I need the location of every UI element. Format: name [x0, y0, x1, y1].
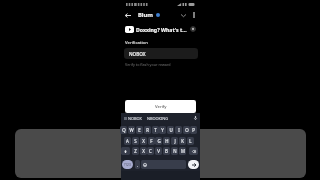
button[interactable]: Back [123, 10, 133, 20]
button[interactable]: Y [159, 126, 166, 134]
button[interactable]: Backspace [189, 147, 198, 155]
staticText: G [157, 138, 161, 144]
staticText: Blum [138, 11, 154, 19]
staticText: W [129, 127, 134, 133]
button[interactable]: T [152, 126, 159, 134]
staticText: U [169, 127, 173, 133]
button[interactable]: X [140, 147, 147, 155]
staticText: N [173, 148, 177, 154]
button[interactable]: More options [189, 10, 199, 20]
staticText: Verify [155, 104, 167, 110]
button[interactable]: Z [132, 147, 139, 155]
button[interactable]: Channel avatar [190, 26, 196, 32]
button[interactable]: G [155, 137, 162, 145]
staticText: M [181, 148, 185, 154]
button[interactable]: V [155, 147, 162, 155]
staticText: NOBOX [129, 51, 146, 57]
staticText: F [150, 138, 153, 144]
staticText: NBOOKING [147, 116, 169, 121]
staticText: A [126, 138, 129, 144]
button[interactable]: J [171, 137, 178, 145]
staticText: E [138, 127, 141, 133]
button[interactable]: Comma [135, 160, 140, 169]
button[interactable]: K [179, 137, 186, 145]
button[interactable]: Enter [188, 160, 199, 169]
staticText: I [178, 127, 180, 133]
staticText: L [189, 138, 192, 144]
button[interactable]: X [140, 137, 147, 145]
staticText: C [149, 148, 152, 154]
staticText: X [142, 148, 145, 154]
staticText: T [154, 127, 157, 133]
button[interactable]: Expand [178, 10, 188, 20]
button[interactable]: U [167, 126, 174, 134]
button[interactable]: M [179, 147, 186, 155]
staticText: K [181, 138, 184, 144]
staticText: R [146, 127, 149, 133]
staticText: Doxxing? What's t… [136, 26, 187, 33]
staticText: NOBOX [128, 116, 142, 121]
staticText: O [185, 127, 189, 133]
button[interactable]: Shift [121, 147, 130, 155]
staticText: J [174, 138, 176, 144]
button[interactable]: W [128, 126, 135, 134]
button[interactable]: Space [141, 160, 186, 169]
staticText: Y [161, 127, 164, 133]
staticText: Q [122, 127, 126, 133]
staticText: X [142, 138, 145, 144]
button[interactable]: B [163, 147, 170, 155]
staticText: , [137, 162, 139, 167]
staticText: B [165, 148, 168, 154]
staticText: Verification [125, 40, 148, 46]
button[interactable]: Verify [125, 100, 196, 113]
staticText: V [157, 148, 160, 154]
button[interactable]: I [175, 126, 182, 134]
button[interactable]: N [171, 147, 178, 155]
button[interactable]: P [190, 126, 197, 134]
button[interactable]: R [144, 126, 151, 134]
staticText: S [134, 138, 137, 144]
staticText: Z [134, 148, 137, 154]
button[interactable]: L [187, 137, 194, 145]
button[interactable]: Doxxing? What's t… [121, 23, 200, 34]
button[interactable]: NOBOX [124, 48, 198, 59]
staticText: ?123 [124, 163, 131, 167]
staticText: Verify to flash your reward [125, 62, 171, 67]
button[interactable]: Q [120, 126, 127, 134]
button[interactable]: Voice input [194, 116, 197, 120]
button[interactable]: F [148, 137, 155, 145]
staticText: H [165, 138, 169, 144]
button[interactable]: H [163, 137, 170, 145]
button[interactable]: O [183, 126, 190, 134]
button[interactable]: C [147, 147, 154, 155]
button[interactable]: Symbols [122, 160, 133, 169]
staticText: P [192, 127, 195, 133]
button[interactable]: E [136, 126, 143, 134]
button[interactable]: A [124, 137, 131, 145]
button[interactable]: S [132, 137, 139, 145]
